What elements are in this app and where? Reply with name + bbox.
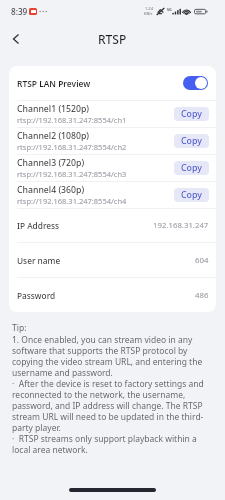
- staticText: Copy: [181, 108, 202, 120]
- staticText: 1. Once enabled, you can stream video in…: [12, 334, 214, 378]
- staticText: IP Address: [17, 220, 60, 231]
- staticText: RTSP: [98, 31, 127, 47]
- staticText: Password: [17, 290, 56, 301]
- staticText: Copy: [181, 162, 202, 174]
- button[interactable]: RTSP LAN Preview: [9, 66, 216, 100]
- staticText: 486: [195, 290, 209, 301]
- staticText: · After the device is reset to factory s…: [12, 378, 214, 433]
- staticText: rtsp://192.168.31.247:8554/ch4: [17, 196, 127, 206]
- button[interactable]: IP Address: [9, 209, 216, 242]
- staticText: rtsp://192.168.31.247:8554/ch1: [17, 115, 127, 125]
- staticText: Copy: [181, 189, 202, 201]
- staticText: User name: [17, 255, 61, 266]
- staticText: Channel2 (1080p): [17, 130, 90, 142]
- button[interactable]: Channel2 (1080p): [9, 128, 216, 154]
- button[interactable]: Password: [9, 278, 216, 312]
- staticText: · RTSP streams only support playback wit…: [12, 433, 214, 455]
- staticText: rtsp://192.168.31.247:8554/ch3: [17, 169, 127, 179]
- button[interactable]: RTSP LAN Preview toggle: [183, 76, 208, 90]
- staticText: 192.168.31.247: [153, 220, 209, 231]
- button[interactable]: Copy: [174, 161, 209, 175]
- button[interactable]: Channel1 (1520p): [9, 101, 216, 127]
- staticText: RTSP LAN Preview: [17, 78, 91, 89]
- button[interactable]: Channel4 (360p): [9, 182, 216, 208]
- staticText: Channel4 (360p): [17, 184, 85, 196]
- button[interactable]: Channel3 (720p): [9, 155, 216, 181]
- button[interactable]: User name: [9, 243, 216, 277]
- staticText: KB/s: [144, 11, 153, 16]
- staticText: rtsp://192.168.31.247:8554/ch2: [17, 142, 127, 152]
- button[interactable]: Back: [0, 22, 32, 56]
- staticText: Copy: [181, 135, 202, 147]
- button[interactable]: Copy: [174, 107, 209, 121]
- staticText: Tip:: [12, 322, 27, 334]
- button[interactable]: Copy: [174, 134, 209, 148]
- staticText: Channel3 (720p): [17, 157, 85, 169]
- staticText: 604: [195, 255, 209, 266]
- staticText: Channel1 (1520p): [17, 103, 90, 115]
- button[interactable]: Copy: [174, 188, 209, 202]
- staticText: 5G: [167, 7, 172, 12]
- staticText: 8:39: [11, 6, 28, 17]
- staticText: 1.24: [145, 6, 153, 11]
